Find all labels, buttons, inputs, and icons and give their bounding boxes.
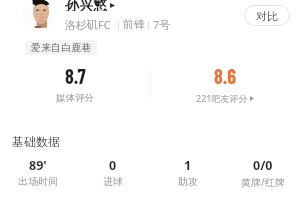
button[interactable]: 爱来自白鹿巷 [25,40,97,55]
staticText: 孙兴慜 [65,0,107,11]
staticText: 媒体评分 [56,92,94,104]
button[interactable]: 0/0 [225,157,300,189]
button[interactable]: 孙兴慜 [65,0,115,11]
staticText: 1 [184,157,192,174]
staticText: 进球 [103,175,123,188]
staticText: 对比 [256,9,278,23]
staticText: 0 [109,157,117,174]
button[interactable]: 0 [75,157,150,188]
staticText: 基础数据 [12,134,60,149]
staticText: 8.7 [65,64,86,88]
staticText: 助攻 [178,175,198,188]
button[interactable]: 8.6 [150,64,300,104]
staticText: 出场时间 [18,175,58,188]
staticText: 89' [29,157,47,174]
staticText: 黄牌/红牌 [241,175,285,189]
staticText: 221吧友评分 [196,92,248,104]
staticText: 前锋 [123,17,145,31]
staticText: 0/0 [253,157,273,174]
staticText: 爱来自白鹿巷 [31,41,91,54]
button[interactable]: 89' [0,157,75,188]
staticText: 洛杉矶FC [65,17,111,32]
button[interactable]: Player avatar [22,0,54,31]
staticText: 8.6 [214,64,237,88]
button[interactable]: 8.7 [0,64,150,104]
staticText: 7号 [153,17,171,32]
button[interactable]: 对比 [244,5,290,26]
button[interactable]: 1 [150,157,225,188]
